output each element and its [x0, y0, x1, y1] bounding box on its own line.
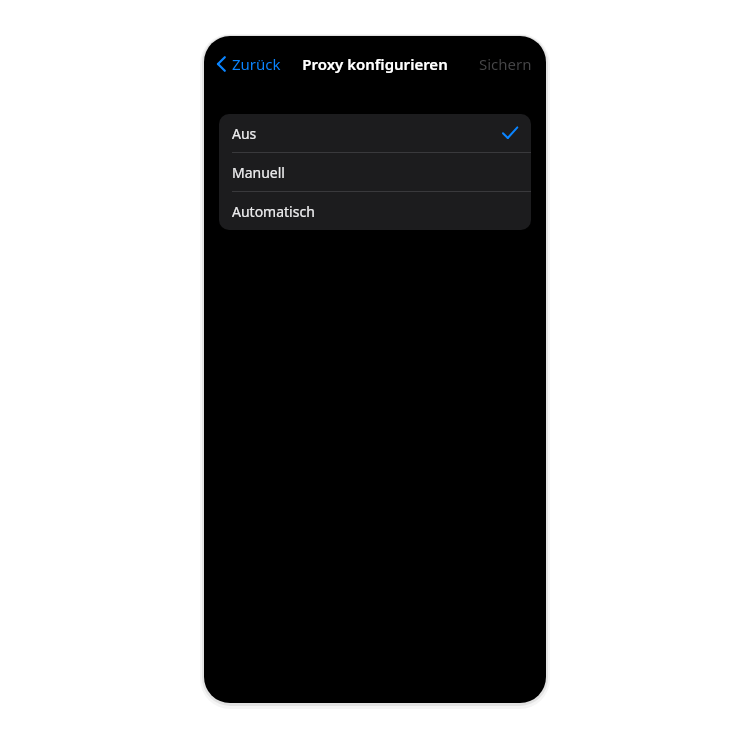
button[interactable]: Automatisch — [219, 192, 531, 230]
staticText: Zurück — [232, 54, 281, 74]
staticText: Proxy konfigurieren — [302, 54, 448, 74]
staticText: Aus — [232, 124, 257, 143]
button[interactable]: Aus — [219, 114, 531, 152]
other: Ausgewählt — [502, 126, 518, 140]
button[interactable]: Manuell — [219, 153, 531, 191]
staticText: Automatisch — [232, 202, 315, 221]
staticText: Manuell — [232, 163, 285, 182]
staticText: Sichern — [479, 54, 532, 74]
button[interactable]: Sichern — [475, 50, 536, 78]
button[interactable]: Zurück — [212, 50, 285, 78]
